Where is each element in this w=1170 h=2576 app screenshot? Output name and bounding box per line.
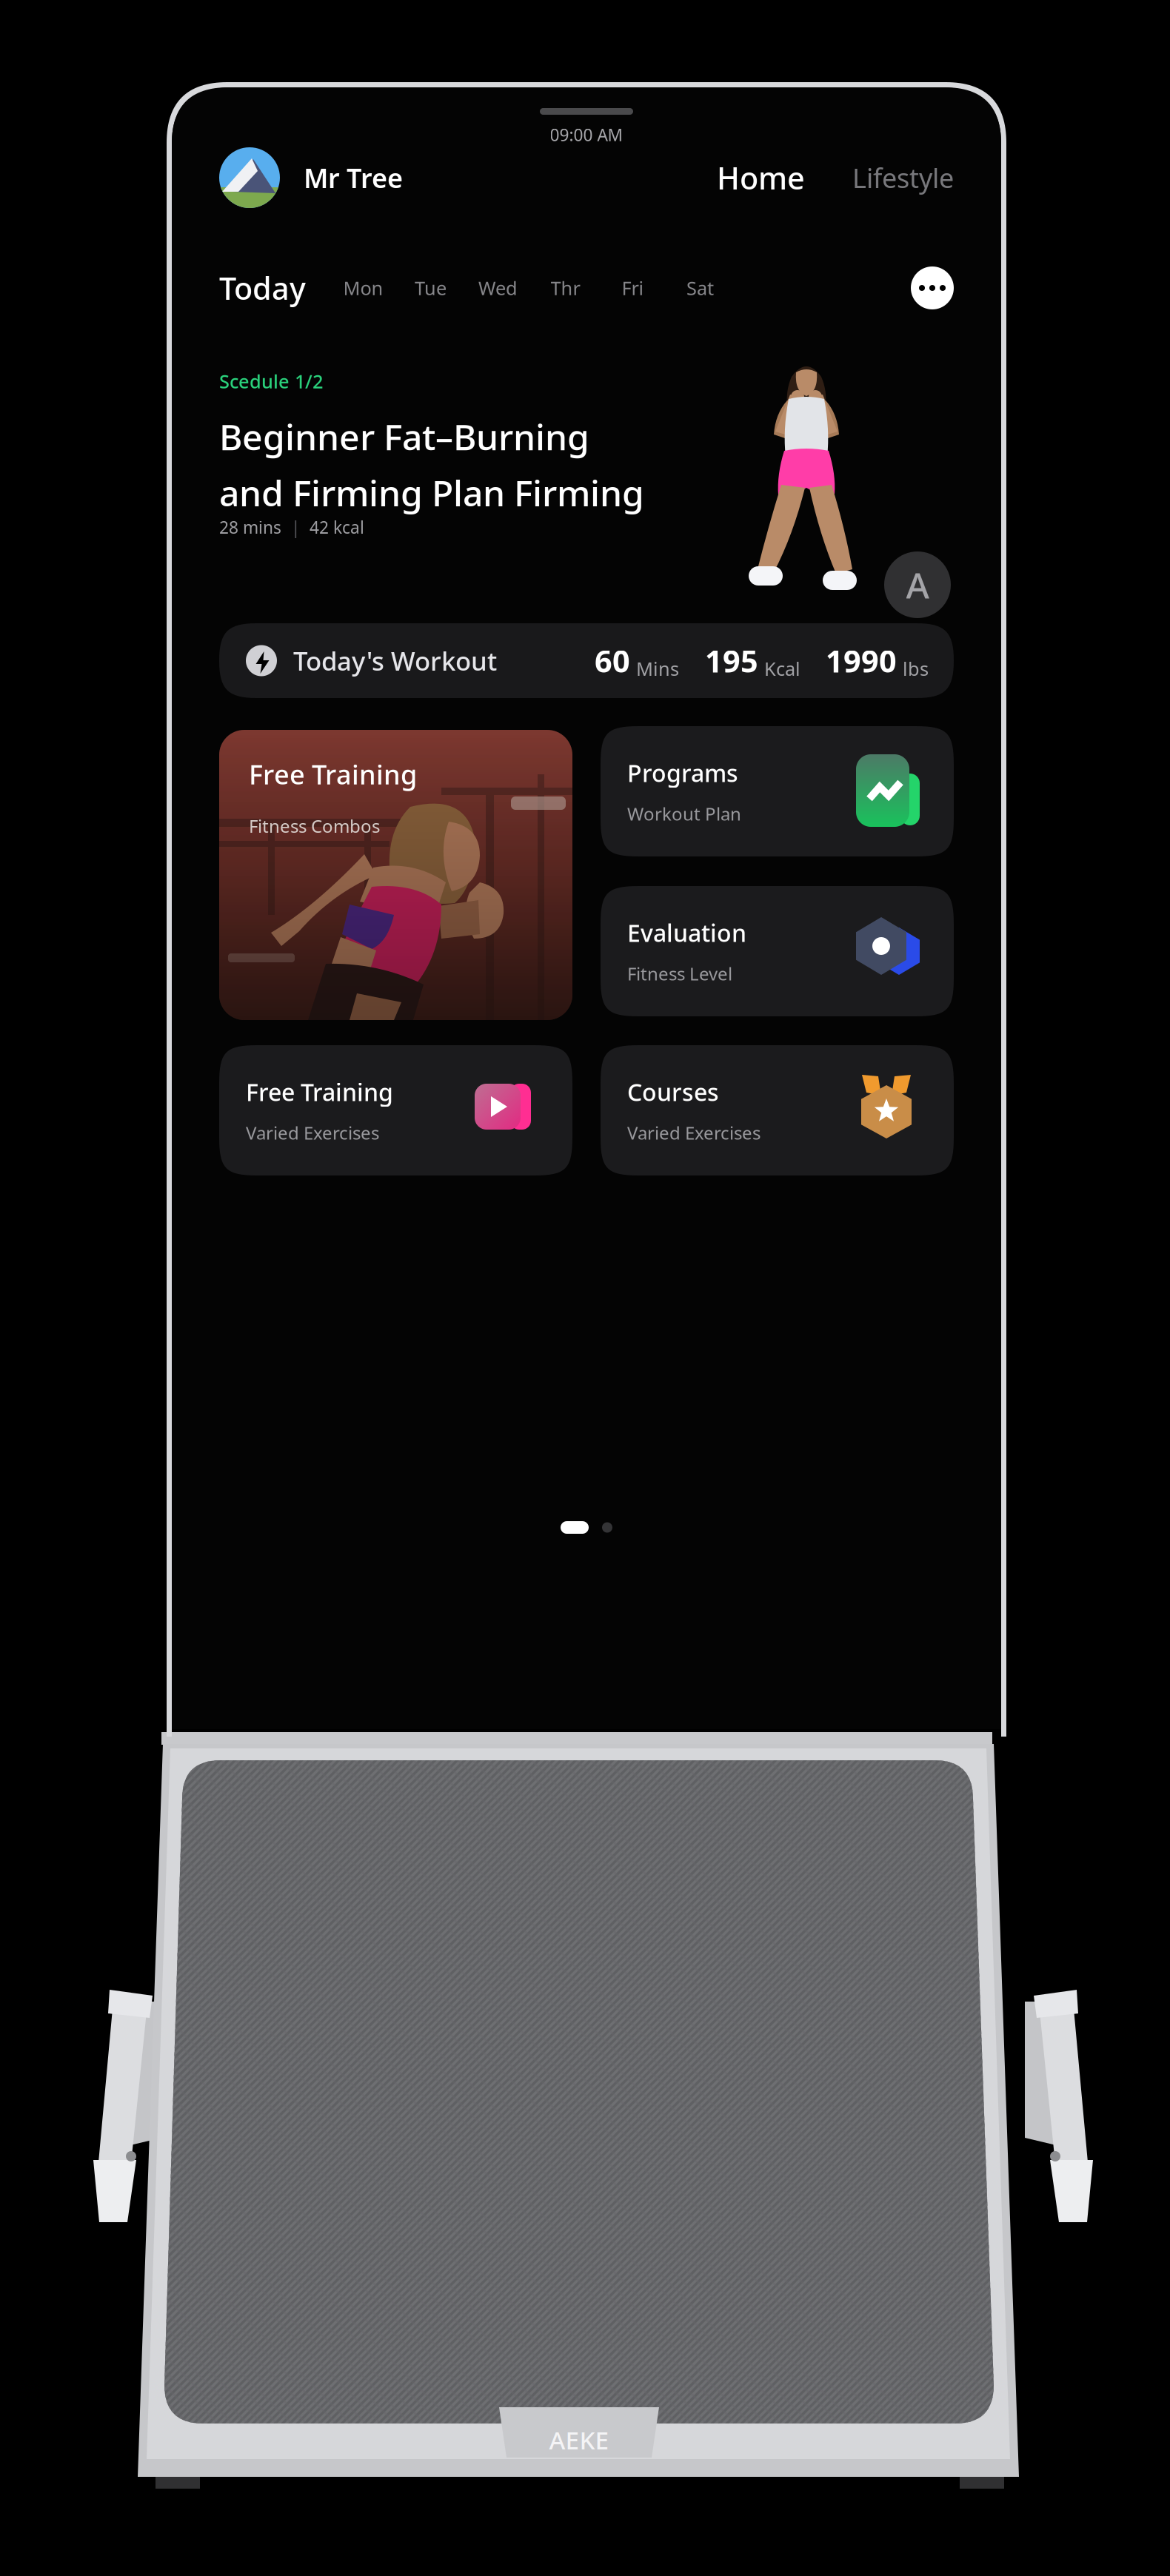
staticText: Beginner Fat–Burning bbox=[219, 413, 589, 460]
staticText: Kcal bbox=[764, 656, 800, 681]
staticText: 60 bbox=[595, 640, 630, 681]
staticText: | bbox=[291, 516, 300, 538]
staticText: Fitness Combos bbox=[249, 814, 380, 838]
staticText: 1990 bbox=[826, 640, 897, 681]
button[interactable]: Free Training bbox=[219, 730, 572, 1020]
staticText: Fitness Level bbox=[627, 962, 732, 985]
staticText: Mr Tree bbox=[304, 160, 403, 195]
staticText: and Firming Plan Firming bbox=[219, 469, 644, 516]
button[interactable]: Programs bbox=[601, 726, 954, 856]
staticText: Workout Plan bbox=[627, 802, 741, 826]
staticText: Mins bbox=[636, 656, 679, 681]
button[interactable]: Free Training bbox=[219, 1045, 572, 1175]
button[interactable]: Tue bbox=[397, 266, 464, 309]
button[interactable]: Mr Tree bbox=[219, 147, 403, 208]
staticText: Programs bbox=[627, 757, 738, 789]
staticText: 09:00 AM bbox=[550, 124, 623, 146]
button[interactable]: Sat bbox=[666, 266, 734, 309]
staticText: Sat bbox=[686, 276, 714, 300]
staticText: 28 mins bbox=[219, 516, 281, 538]
staticText: Free Training bbox=[249, 757, 417, 792]
staticText: Today bbox=[219, 268, 306, 308]
button[interactable]: Today bbox=[219, 268, 306, 308]
staticText: Home bbox=[717, 157, 805, 198]
staticText: Thr bbox=[551, 276, 580, 300]
staticText: Fri bbox=[622, 276, 644, 300]
staticText: Courses bbox=[627, 1076, 719, 1108]
button[interactable]: Assistant bbox=[884, 551, 951, 618]
staticText: AEKE bbox=[549, 2423, 609, 2456]
button[interactable]: Home bbox=[717, 157, 805, 198]
staticText: Varied Exercises bbox=[627, 1121, 760, 1145]
staticText: 195 bbox=[705, 640, 758, 681]
staticText: Scedule 1/2 bbox=[219, 369, 323, 394]
staticText: Evaluation bbox=[627, 917, 746, 948]
button[interactable]: More options bbox=[911, 266, 954, 309]
staticText: Mon bbox=[343, 276, 383, 300]
button[interactable]: Today's Workout bbox=[219, 623, 954, 698]
staticText: Varied Exercises bbox=[246, 1121, 379, 1145]
staticText: lbs bbox=[903, 656, 929, 681]
staticText: Today's Workout bbox=[293, 644, 497, 678]
staticText: 42 kcal bbox=[310, 516, 364, 538]
button[interactable]: Courses bbox=[601, 1045, 954, 1175]
button[interactable]: Thr bbox=[532, 266, 599, 309]
button[interactable]: Mon bbox=[330, 266, 397, 309]
staticText: A bbox=[906, 561, 929, 608]
staticText: Tue bbox=[415, 276, 447, 300]
staticText: Wed bbox=[478, 276, 518, 300]
staticText: Lifestyle bbox=[852, 160, 954, 195]
button[interactable]: Evaluation bbox=[601, 886, 954, 1016]
button[interactable]: Fri bbox=[599, 266, 666, 309]
staticText: Free Training bbox=[246, 1076, 393, 1108]
button[interactable]: Lifestyle bbox=[852, 160, 954, 195]
button[interactable]: Wed bbox=[464, 266, 532, 309]
